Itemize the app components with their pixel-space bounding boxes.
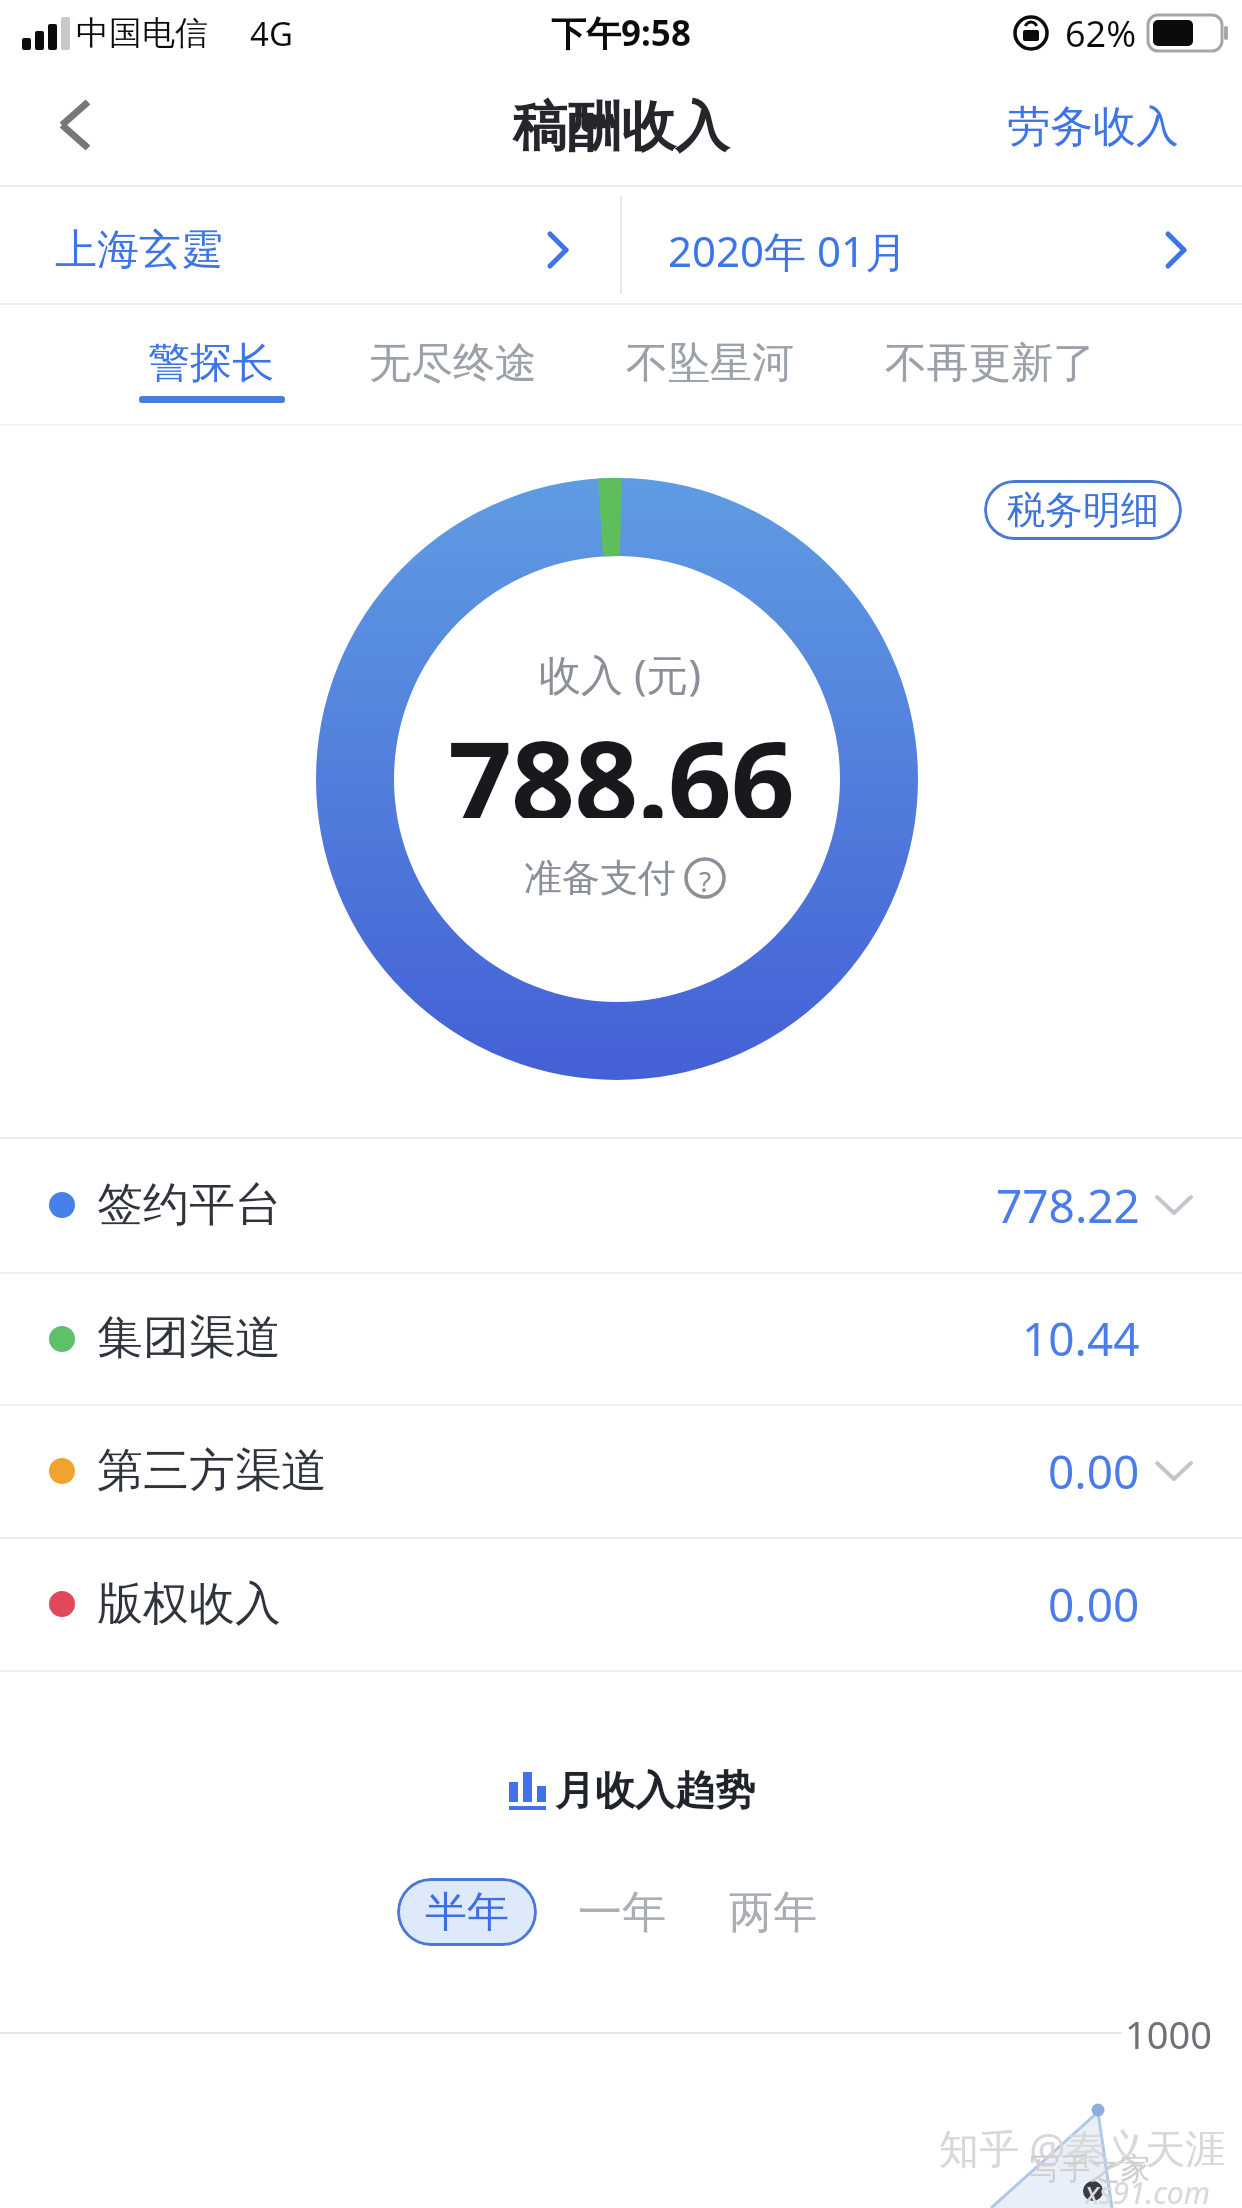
staticText: 500 — [1124, 2198, 1203, 2202]
staticText: 无尽终途 — [369, 337, 537, 390]
staticText: 0.00 — [1048, 1440, 1140, 1503]
staticText: 稿酬收入 — [513, 93, 729, 161]
staticText: 集团渠道 — [97, 1309, 281, 1367]
button[interactable] — [0, 187, 620, 303]
staticText: 劳务收入 — [1007, 100, 1179, 154]
staticText: 10.44 — [1022, 1307, 1140, 1370]
button[interactable]: 两年 — [711, 1878, 835, 1946]
staticText: 62% — [1065, 9, 1137, 58]
button[interactable] — [622, 187, 1242, 303]
staticText: 准备支付 — [524, 854, 676, 902]
staticText: 不坠星河 — [626, 337, 794, 390]
staticText: 788.66 — [448, 702, 794, 818]
button[interactable]: 劳务收入 — [1000, 96, 1186, 158]
button[interactable]: 警探长 — [128, 325, 294, 401]
staticText: xs91.com — [1085, 2172, 1210, 2204]
staticText: 一年 — [578, 1885, 666, 1940]
button[interactable]: 无尽终途 — [368, 325, 538, 401]
staticText: 4G — [250, 11, 293, 56]
staticText: 月收入趋势 — [555, 1765, 755, 1815]
button[interactable]: 不坠星河 — [625, 325, 795, 401]
staticText: 上海玄霆 — [55, 224, 223, 277]
staticText: 知乎 @秦义天涯 — [939, 2120, 1226, 2172]
staticText: 2020年 01月 — [668, 222, 908, 279]
button[interactable] — [40, 86, 120, 166]
staticText: 收入 (元) — [539, 645, 702, 697]
staticText: 下午9:58 — [551, 9, 691, 57]
staticText: 0.00 — [1048, 1573, 1140, 1636]
button[interactable] — [0, 1405, 1242, 1536]
button[interactable] — [0, 1272, 1242, 1403]
staticText: 两年 — [729, 1885, 817, 1940]
staticText: 第三方渠道 — [97, 1442, 327, 1500]
button[interactable]: 税务明细 — [984, 480, 1182, 540]
button[interactable]: 半年 — [397, 1878, 537, 1946]
button[interactable]: 一年 — [560, 1878, 684, 1946]
staticText: 1000 — [1125, 2008, 1212, 2058]
staticText: 中国电信 — [76, 12, 208, 54]
button[interactable] — [0, 1139, 1242, 1270]
staticText: 税务明细 — [1007, 486, 1159, 534]
staticText: 不再更新了 — [885, 337, 1095, 390]
staticText: 半年 — [425, 1886, 509, 1939]
staticText: ? — [699, 862, 712, 896]
button[interactable] — [470, 1755, 770, 1825]
staticText: 警探长 — [148, 337, 274, 390]
staticText: 778.22 — [996, 1174, 1140, 1237]
staticText: 写手之家 — [1030, 2150, 1150, 2186]
button[interactable]: 不再更新了 — [884, 325, 1096, 401]
staticText: 签约平台 — [97, 1176, 281, 1234]
staticText: 版权收入 — [97, 1575, 281, 1633]
button[interactable] — [0, 1538, 1242, 1669]
